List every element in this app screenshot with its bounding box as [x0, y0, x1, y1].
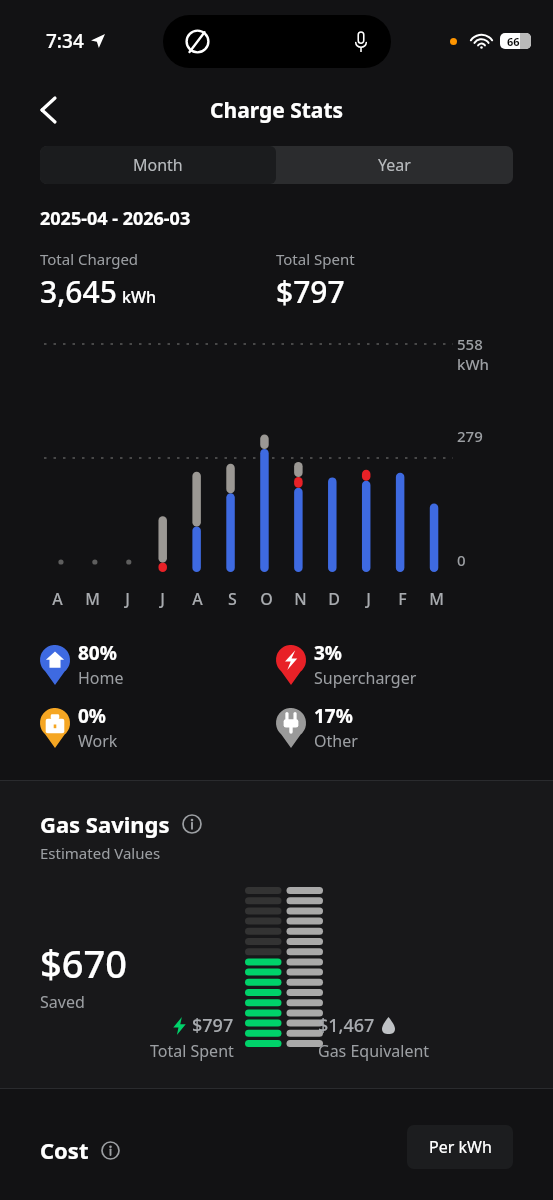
staticText: Estimated Values — [40, 843, 161, 863]
staticText: Supercharger — [314, 667, 417, 689]
button[interactable]: 80% — [40, 640, 276, 689]
staticText: kWh — [457, 354, 489, 374]
staticText: kWh — [122, 286, 157, 308]
staticText: $797 — [276, 271, 345, 312]
staticText: 2025-04 - 2026-03 — [40, 206, 191, 231]
staticText: Cost — [40, 1135, 89, 1165]
staticText: Per kWh — [429, 1136, 492, 1158]
staticText: J — [125, 588, 130, 610]
staticText: J — [366, 588, 371, 610]
staticText: O — [260, 588, 273, 610]
staticText: 3% — [314, 640, 343, 666]
staticText: Total Spent — [276, 249, 355, 269]
staticText: Year — [378, 154, 411, 176]
staticText: Home — [78, 667, 124, 689]
staticText: $797 — [192, 1013, 234, 1038]
staticText: 7:34 — [46, 28, 84, 54]
staticText: Month — [133, 154, 183, 176]
staticText: $670 — [40, 937, 127, 989]
staticText: F — [398, 588, 407, 610]
staticText: N — [294, 588, 307, 610]
staticText: Total Charged — [40, 249, 139, 269]
button[interactable]: Cost info — [99, 1139, 121, 1161]
button[interactable]: Back — [28, 90, 68, 130]
staticText: M — [429, 588, 444, 610]
staticText: Gas Savings — [40, 809, 170, 839]
staticText: D — [328, 588, 340, 610]
staticText: M — [85, 588, 100, 610]
button[interactable]: 0% — [40, 703, 276, 752]
staticText: Work — [78, 730, 118, 752]
staticText: 66 — [507, 34, 520, 49]
staticText: Charge Stats — [210, 96, 344, 125]
staticText: Saved — [40, 991, 85, 1013]
staticText: J — [160, 588, 165, 610]
button[interactable]: Per kWh — [407, 1125, 513, 1169]
staticText: 0% — [78, 703, 107, 729]
button[interactable]: Year — [276, 146, 513, 184]
staticText: Other — [314, 730, 358, 752]
button[interactable]: 3% — [276, 640, 513, 689]
staticText: 17% — [314, 703, 353, 729]
staticText: 0 — [457, 550, 466, 570]
staticText: Gas Equivalent — [318, 1040, 430, 1062]
staticText: 279 — [457, 426, 483, 446]
staticText: 558 — [457, 334, 483, 354]
button[interactable]: 17% — [276, 703, 513, 752]
button[interactable]: Month — [40, 146, 276, 184]
staticText: A — [52, 588, 63, 610]
staticText: A — [192, 588, 203, 610]
staticText: 80% — [78, 640, 117, 666]
staticText: S — [228, 588, 237, 610]
staticText: Total Spent — [150, 1040, 234, 1062]
button[interactable]: Gas Savings info — [180, 812, 204, 836]
staticText: $1,467 — [318, 1013, 375, 1038]
staticText: 3,645 — [40, 271, 117, 312]
